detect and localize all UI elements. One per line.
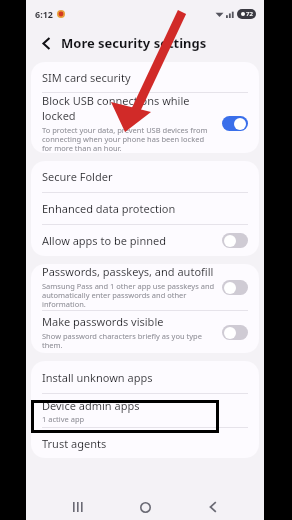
staticText: Make passwords visible	[42, 314, 164, 329]
button[interactable]: Back	[35, 32, 57, 54]
staticText: To protect your data, prevent USB device…	[42, 125, 216, 153]
button[interactable]: Enhanced data protection	[31, 193, 259, 224]
button[interactable]: Install unknown apps	[31, 361, 259, 393]
staticText: Passwords, passkeys, and autofill	[42, 264, 214, 279]
button[interactable]: Recent apps	[60, 494, 94, 520]
button[interactable]: SIM card security	[31, 62, 259, 92]
button[interactable]: Secure Folder	[31, 161, 259, 192]
staticText: Trust agents	[42, 436, 107, 451]
button[interactable]: Make passwords visible	[31, 311, 259, 353]
staticText: Enhanced data protection	[42, 201, 176, 216]
button[interactable]: Back	[196, 494, 230, 520]
staticText: SIM card security	[42, 70, 131, 85]
staticText: 72	[246, 10, 253, 18]
staticText: 6:12	[35, 8, 53, 20]
button[interactable]: Toggle	[222, 233, 248, 248]
staticText: Device admin apps	[42, 398, 140, 413]
staticText: Block USB connections while locked	[42, 93, 216, 123]
button[interactable]: Allow apps to be pinned	[31, 225, 259, 256]
button[interactable]: Passwords, passkeys, and autofill	[31, 264, 259, 310]
staticText: Secure Folder	[42, 169, 113, 184]
button[interactable]: Home	[128, 494, 162, 520]
button[interactable]: Device admin apps	[31, 394, 259, 427]
button[interactable]: Block USB connections while locked	[31, 93, 259, 153]
staticText: Samsung Pass and 1 other app use passkey…	[42, 281, 216, 310]
button[interactable]: Toggle	[222, 280, 248, 295]
staticText: Allow apps to be pinned	[42, 233, 166, 248]
staticText: 1 active app	[42, 414, 85, 424]
button[interactable]: Toggle	[222, 325, 248, 340]
button[interactable]: Toggle	[222, 116, 248, 131]
button[interactable]: Trust agents	[31, 428, 259, 458]
staticText: Show password characters briefly as you …	[42, 331, 216, 351]
staticText: More security settings	[61, 34, 207, 52]
staticText: Install unknown apps	[42, 370, 153, 385]
